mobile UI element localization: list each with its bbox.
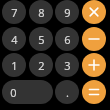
staticText: 4 xyxy=(11,32,18,47)
staticText: 5 xyxy=(38,32,45,47)
staticText: 1 xyxy=(11,58,18,73)
button[interactable]: 1 xyxy=(2,53,26,77)
button[interactable]: Equals xyxy=(82,80,106,104)
staticText: . xyxy=(66,85,69,100)
button[interactable]: 2 xyxy=(29,53,53,77)
button[interactable]: Add xyxy=(82,53,106,77)
button[interactable]: 4 xyxy=(2,27,26,51)
button[interactable]: 9 xyxy=(55,0,79,24)
button[interactable]: 5 xyxy=(29,27,53,51)
staticText: 9 xyxy=(64,5,71,20)
button[interactable]: Multiply xyxy=(82,0,106,24)
button[interactable]: 6 xyxy=(55,27,79,51)
staticText: 8 xyxy=(38,5,45,20)
staticText: 3 xyxy=(64,58,71,73)
button[interactable]: 7 xyxy=(2,0,26,24)
staticText: 2 xyxy=(38,58,45,73)
button[interactable]: . xyxy=(55,80,79,104)
staticText: 6 xyxy=(64,32,71,47)
button[interactable]: 8 xyxy=(29,0,53,24)
button[interactable]: Subtract xyxy=(82,27,106,51)
staticText: 0 xyxy=(10,85,17,100)
button[interactable]: 3 xyxy=(55,53,79,77)
button[interactable]: 0 xyxy=(2,80,53,104)
staticText: 7 xyxy=(11,5,18,20)
